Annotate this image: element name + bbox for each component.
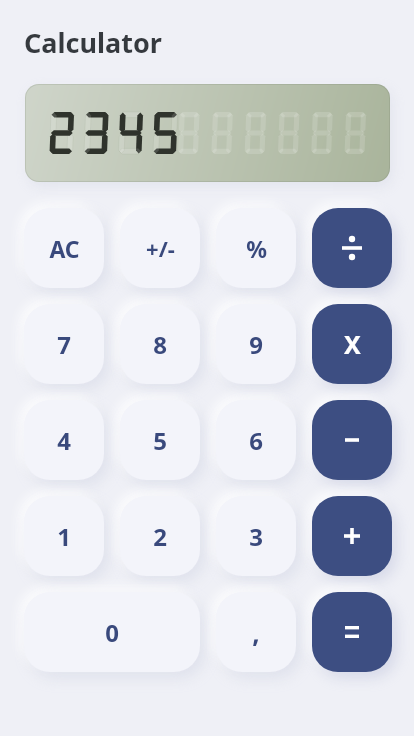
- button[interactable]: ,: [216, 592, 296, 672]
- staticText: Calculator: [24, 24, 162, 61]
- button[interactable]: AC: [24, 208, 104, 288]
- staticText: +/-: [146, 233, 175, 263]
- button[interactable]: 7: [24, 304, 104, 384]
- staticText: 3: [249, 520, 263, 553]
- staticText: 5: [153, 424, 167, 457]
- button[interactable]: 6: [216, 400, 296, 480]
- staticText: 2: [153, 520, 167, 553]
- button[interactable]: [312, 496, 392, 576]
- staticText: 4: [57, 424, 71, 457]
- button[interactable]: 3: [216, 496, 296, 576]
- button[interactable]: 9: [216, 304, 296, 384]
- button[interactable]: 4: [24, 400, 104, 480]
- staticText: 6: [249, 424, 263, 457]
- staticText: 9: [249, 328, 263, 361]
- button[interactable]: 0: [24, 592, 200, 672]
- button[interactable]: [312, 208, 392, 288]
- button[interactable]: [312, 592, 392, 672]
- button[interactable]: 5: [120, 400, 200, 480]
- staticText: ,: [252, 615, 260, 650]
- staticText: 1: [57, 520, 71, 553]
- staticText: 7: [57, 328, 71, 361]
- button[interactable]: +/-: [120, 208, 200, 288]
- staticText: AC: [49, 233, 80, 264]
- button[interactable]: X: [312, 304, 392, 384]
- button[interactable]: [312, 400, 392, 480]
- staticText: %: [246, 233, 267, 264]
- staticText: 0: [105, 616, 119, 649]
- button[interactable]: 2: [120, 496, 200, 576]
- staticText: 8: [153, 328, 167, 361]
- button[interactable]: %: [216, 208, 296, 288]
- staticText: X: [344, 327, 361, 361]
- button[interactable]: 1: [24, 496, 104, 576]
- button[interactable]: 8: [120, 304, 200, 384]
